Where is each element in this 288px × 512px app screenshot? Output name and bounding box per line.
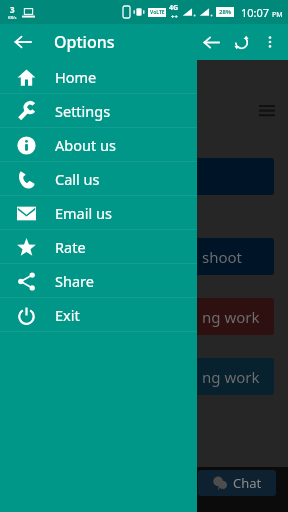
staticText: VoLTE: [150, 9, 165, 16]
staticText: Email us: [55, 203, 112, 223]
staticText: 4G: [169, 3, 179, 13]
staticText: ++: [171, 13, 178, 21]
staticText: Rate: [55, 237, 86, 257]
button[interactable]: Back: [196, 27, 226, 57]
staticText: VoLTE: [150, 9, 165, 16]
button[interactable]: Refresh: [226, 27, 256, 57]
button[interactable]: Exit: [0, 298, 197, 332]
staticText: ng work: [202, 307, 260, 327]
staticText: PM: [272, 10, 283, 20]
button[interactable]: Email us: [0, 196, 197, 230]
staticText: 4G: [169, 3, 179, 13]
staticText: 28%: [219, 8, 232, 16]
staticText: Settings: [55, 101, 111, 121]
staticText: KB/s: [8, 15, 17, 20]
staticText: 3: [10, 4, 15, 15]
staticText: Call us: [55, 169, 100, 189]
staticText: ng work: [202, 367, 260, 387]
staticText: About us: [55, 135, 116, 155]
staticText: Options: [54, 31, 115, 53]
button[interactable]: Rate: [0, 230, 197, 264]
staticText: 28%: [219, 8, 232, 16]
staticText: Options: [54, 31, 115, 53]
button[interactable]: Call us: [0, 162, 197, 196]
staticText: PM: [272, 10, 283, 20]
button[interactable]: Back: [196, 27, 226, 57]
staticText: shoot: [202, 247, 243, 267]
button[interactable]: Settings: [0, 94, 197, 128]
button[interactable]: Home: [0, 60, 197, 94]
staticText: Exit: [55, 305, 80, 325]
staticText: KB/s: [8, 15, 17, 20]
staticText: ++: [171, 13, 178, 21]
button[interactable]: Back: [8, 27, 38, 57]
button[interactable]: ng work: [14, 298, 274, 335]
staticText: 10:07: [241, 5, 270, 20]
staticText: Share: [55, 271, 94, 291]
staticText: 10:07: [241, 5, 270, 20]
button[interactable]: Menu: [256, 100, 278, 122]
button[interactable]: Share: [0, 264, 197, 298]
button[interactable]: Refresh: [226, 27, 256, 57]
staticText: Home: [55, 67, 97, 87]
staticText: Chat: [233, 474, 262, 492]
button[interactable]: More options: [256, 28, 284, 56]
button[interactable]: Back: [8, 27, 38, 57]
button[interactable]: About us: [0, 128, 197, 162]
button[interactable]: More options: [256, 28, 284, 56]
button[interactable]: Chat: [198, 470, 276, 496]
staticText: 3: [10, 4, 15, 15]
button[interactable]: ng work: [14, 358, 274, 395]
button[interactable]: shoot: [14, 238, 274, 275]
button[interactable]: [14, 158, 274, 195]
